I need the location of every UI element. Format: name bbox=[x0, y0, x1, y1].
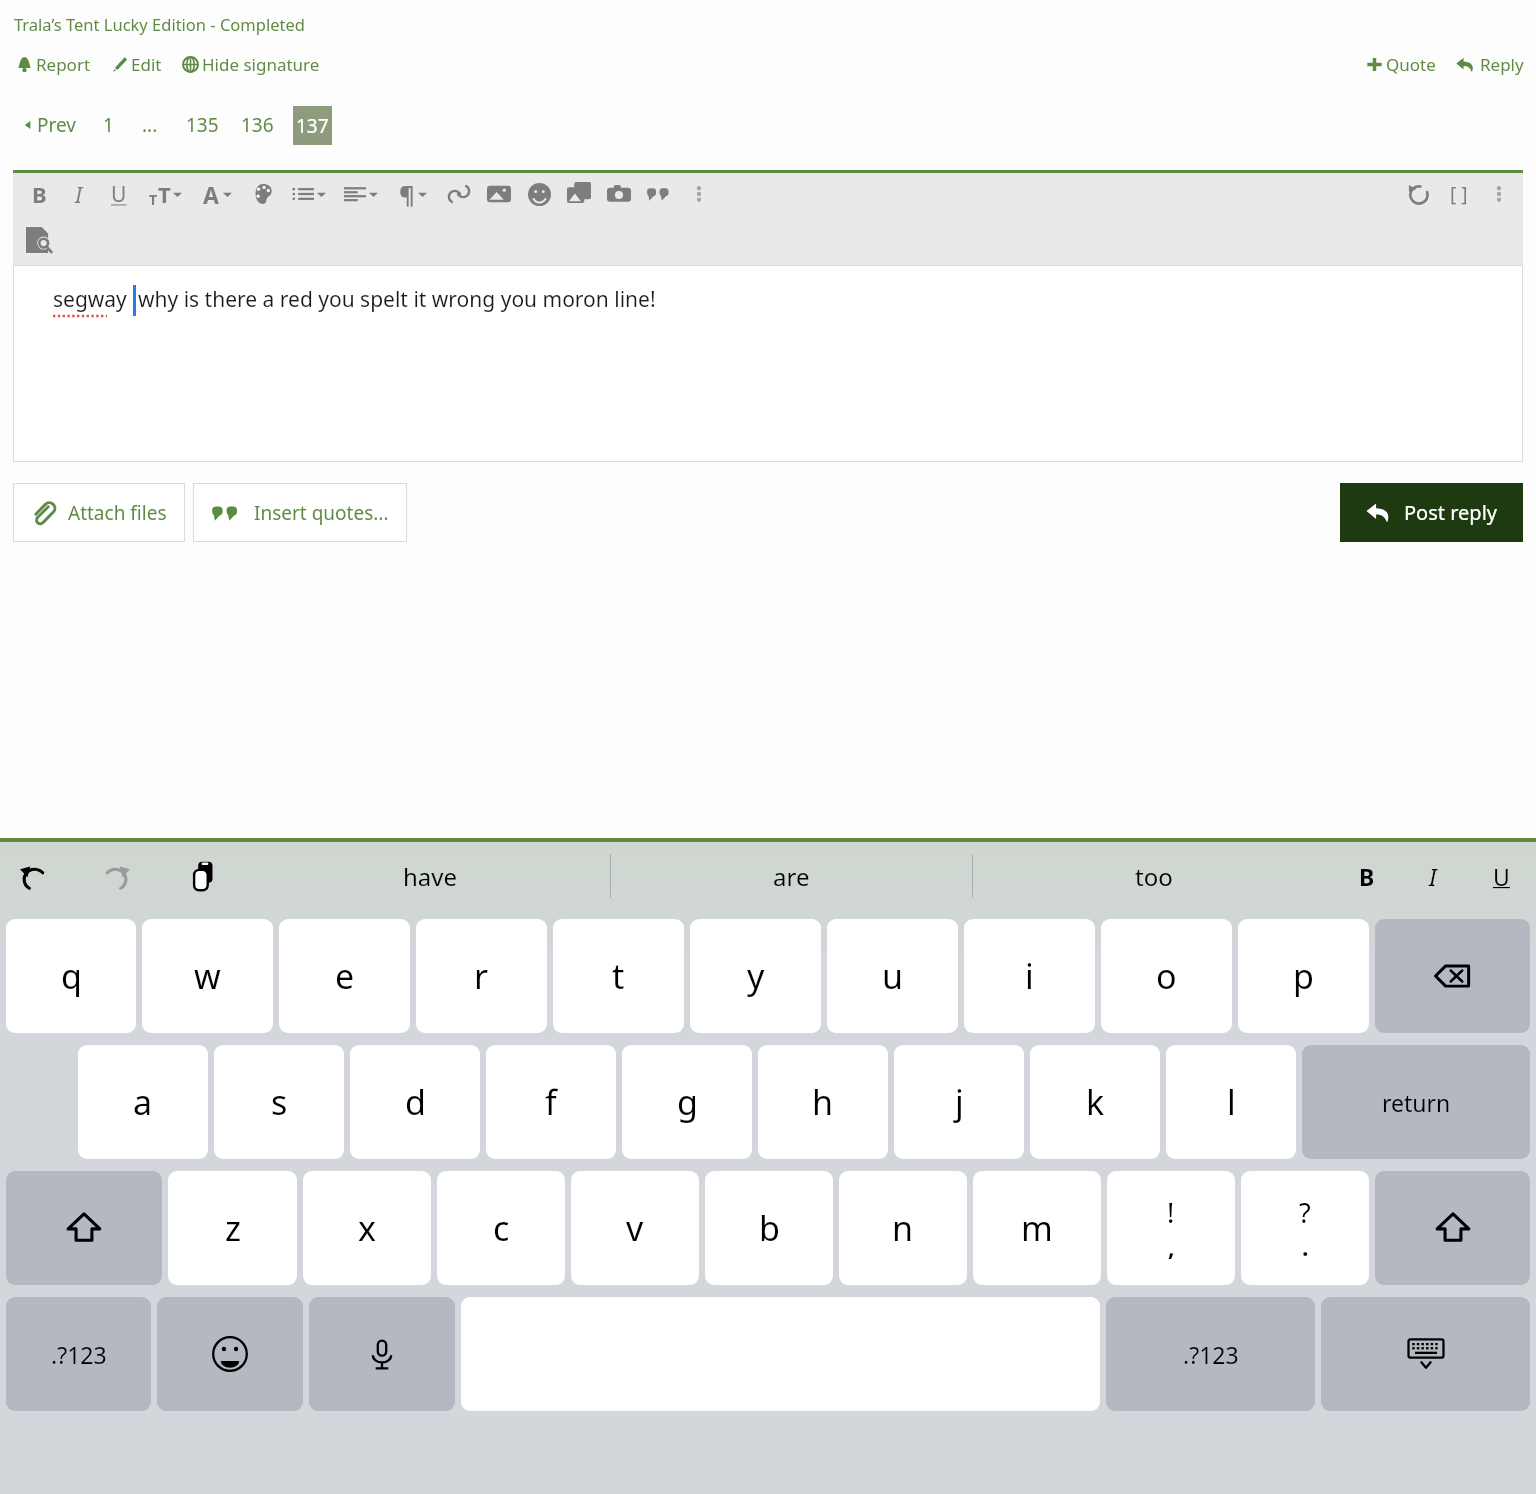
button[interactable]: B bbox=[1334, 842, 1400, 910]
button[interactable]: Bold bbox=[19, 174, 59, 214]
staticText: , bbox=[1168, 1231, 1175, 1262]
button[interactable]: Clipboard bbox=[160, 842, 250, 910]
button[interactable]: Backspace bbox=[1375, 919, 1530, 1033]
button[interactable]: n bbox=[839, 1171, 967, 1285]
button[interactable]: r bbox=[416, 919, 547, 1033]
button[interactable]: i bbox=[964, 919, 1095, 1033]
button[interactable]: l bbox=[1166, 1045, 1296, 1159]
button[interactable]: ? bbox=[1241, 1171, 1369, 1285]
button[interactable]: z bbox=[168, 1171, 297, 1285]
button[interactable]: y bbox=[690, 919, 821, 1033]
button[interactable]: Code bbox=[1439, 174, 1479, 214]
button[interactable]: v bbox=[571, 1171, 699, 1285]
button[interactable]: Hide keyboard bbox=[1321, 1297, 1530, 1411]
button[interactable]: ... bbox=[139, 104, 161, 146]
button[interactable]: k bbox=[1030, 1045, 1160, 1159]
button[interactable]: Insert quotes... bbox=[193, 483, 407, 542]
staticText: t bbox=[612, 953, 625, 999]
button[interactable]: j bbox=[894, 1045, 1024, 1159]
button[interactable]: Symbols bbox=[1106, 1297, 1315, 1411]
staticText: q bbox=[61, 953, 82, 999]
button[interactable]: Attach files bbox=[13, 483, 185, 542]
button[interactable]: Paragraph bbox=[387, 174, 439, 214]
staticText: 135 bbox=[186, 112, 219, 138]
button[interactable]: are bbox=[611, 842, 972, 910]
button[interactable]: too bbox=[973, 842, 1334, 910]
button[interactable]: Symbols bbox=[6, 1297, 151, 1411]
staticText: .?123 bbox=[1183, 1339, 1239, 1370]
button[interactable]: Gallery bbox=[559, 174, 599, 214]
button[interactable]: Camera bbox=[599, 174, 639, 214]
button[interactable]: Image bbox=[479, 174, 519, 214]
button[interactable]: w bbox=[142, 919, 273, 1033]
button[interactable]: Return bbox=[1302, 1045, 1530, 1159]
staticText: w bbox=[194, 953, 221, 999]
button[interactable]: Quote bbox=[639, 174, 679, 214]
staticText: return bbox=[1382, 1087, 1451, 1118]
staticText: Trala’s Tent Lucky Edition - Completed bbox=[14, 13, 305, 35]
button[interactable]: Post reply bbox=[1340, 483, 1523, 542]
button[interactable]: Preview bbox=[19, 220, 59, 260]
button[interactable]: Quote bbox=[1366, 47, 1436, 82]
button[interactable]: d bbox=[350, 1045, 480, 1159]
staticText: .?123 bbox=[51, 1339, 107, 1370]
button[interactable]: 1 bbox=[100, 104, 117, 146]
button[interactable]: Link bbox=[439, 174, 479, 214]
button[interactable]: p bbox=[1238, 919, 1369, 1033]
button[interactable]: s bbox=[214, 1045, 344, 1159]
button[interactable]: Options bbox=[1479, 174, 1519, 214]
staticText: g bbox=[677, 1079, 698, 1125]
button[interactable]: o bbox=[1101, 919, 1232, 1033]
button[interactable]: 136 bbox=[238, 104, 277, 146]
button[interactable]: x bbox=[303, 1171, 431, 1285]
staticText: p bbox=[1293, 953, 1314, 999]
button[interactable]: Text colour bbox=[191, 174, 243, 214]
button[interactable]: Redo bbox=[70, 842, 160, 910]
button[interactable]: Align bbox=[335, 174, 387, 214]
button[interactable]: Italic bbox=[59, 174, 99, 214]
button[interactable]: List bbox=[283, 174, 335, 214]
button[interactable]: Reply bbox=[1456, 47, 1524, 82]
button[interactable]: Palette bbox=[243, 174, 283, 214]
button[interactable]: f bbox=[486, 1045, 616, 1159]
button[interactable]: c bbox=[437, 1171, 565, 1285]
staticText: s bbox=[271, 1079, 288, 1125]
button[interactable]: segway bbox=[13, 265, 1523, 462]
button[interactable]: Report bbox=[16, 47, 91, 82]
button[interactable]: ! bbox=[1107, 1171, 1235, 1285]
button[interactable]: Prev bbox=[20, 104, 80, 146]
button[interactable]: Edit bbox=[111, 47, 162, 82]
staticText: 136 bbox=[241, 112, 274, 138]
button[interactable]: g bbox=[622, 1045, 752, 1159]
button[interactable]: Shift bbox=[1375, 1171, 1530, 1285]
button[interactable]: Emoji bbox=[157, 1297, 303, 1411]
button[interactable]: q bbox=[6, 919, 136, 1033]
button[interactable]: 137 bbox=[293, 106, 332, 145]
button[interactable]: Font size bbox=[139, 174, 191, 214]
button[interactable]: Voice input bbox=[309, 1297, 455, 1411]
button[interactable]: 135 bbox=[183, 104, 222, 146]
staticText: why is there a red you spelt it wrong yo… bbox=[138, 285, 656, 314]
button[interactable]: Underline bbox=[99, 174, 139, 214]
button[interactable]: Undo bbox=[1399, 174, 1439, 214]
button[interactable]: have bbox=[250, 842, 610, 910]
button[interactable]: b bbox=[705, 1171, 833, 1285]
staticText: Prev bbox=[37, 112, 76, 138]
button[interactable]: u bbox=[827, 919, 958, 1033]
staticText: b bbox=[759, 1205, 780, 1251]
button[interactable]: Emoji bbox=[519, 174, 559, 214]
staticText: T bbox=[158, 179, 171, 209]
button[interactable]: I bbox=[1400, 842, 1466, 910]
button[interactable]: t bbox=[553, 919, 684, 1033]
button[interactable]: Undo bbox=[0, 842, 70, 910]
staticText: B bbox=[1359, 861, 1375, 892]
button[interactable]: Hide signature bbox=[182, 47, 320, 82]
button[interactable]: U bbox=[1466, 842, 1536, 910]
button[interactable]: Shift bbox=[6, 1171, 162, 1285]
button[interactable]: More bbox=[679, 174, 719, 214]
button[interactable]: m bbox=[973, 1171, 1101, 1285]
button[interactable]: e bbox=[279, 919, 410, 1033]
button[interactable]: h bbox=[758, 1045, 888, 1159]
button[interactable]: a bbox=[78, 1045, 208, 1159]
